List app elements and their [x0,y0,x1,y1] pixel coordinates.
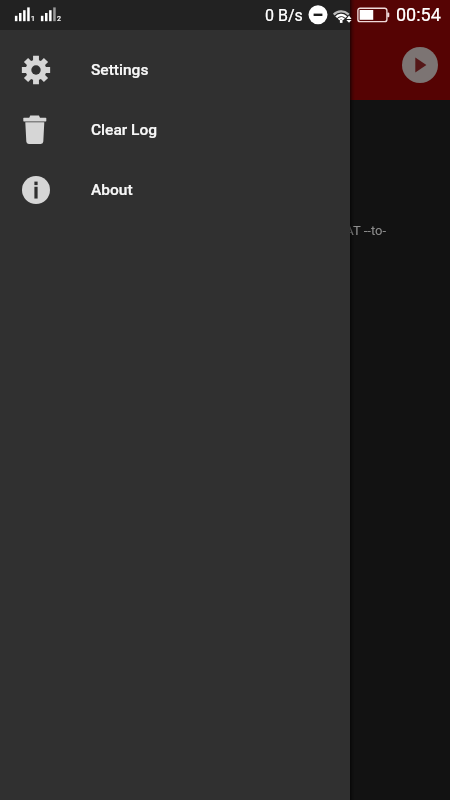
staticText: logcat -v brief CAT --to- [255,223,387,238]
button[interactable]: Settings [0,40,350,100]
staticText: 1 [31,15,35,23]
staticText: About [91,181,133,199]
staticText: 0 B/s [265,6,303,25]
button[interactable]: Play [402,47,438,83]
button[interactable]: About [0,160,350,220]
staticText: Settings [91,61,149,79]
staticText: Clear Log [91,121,158,139]
button[interactable]: Clear Log [0,100,350,160]
staticText: 2 [57,15,61,23]
staticText: 00:54 [396,4,441,25]
